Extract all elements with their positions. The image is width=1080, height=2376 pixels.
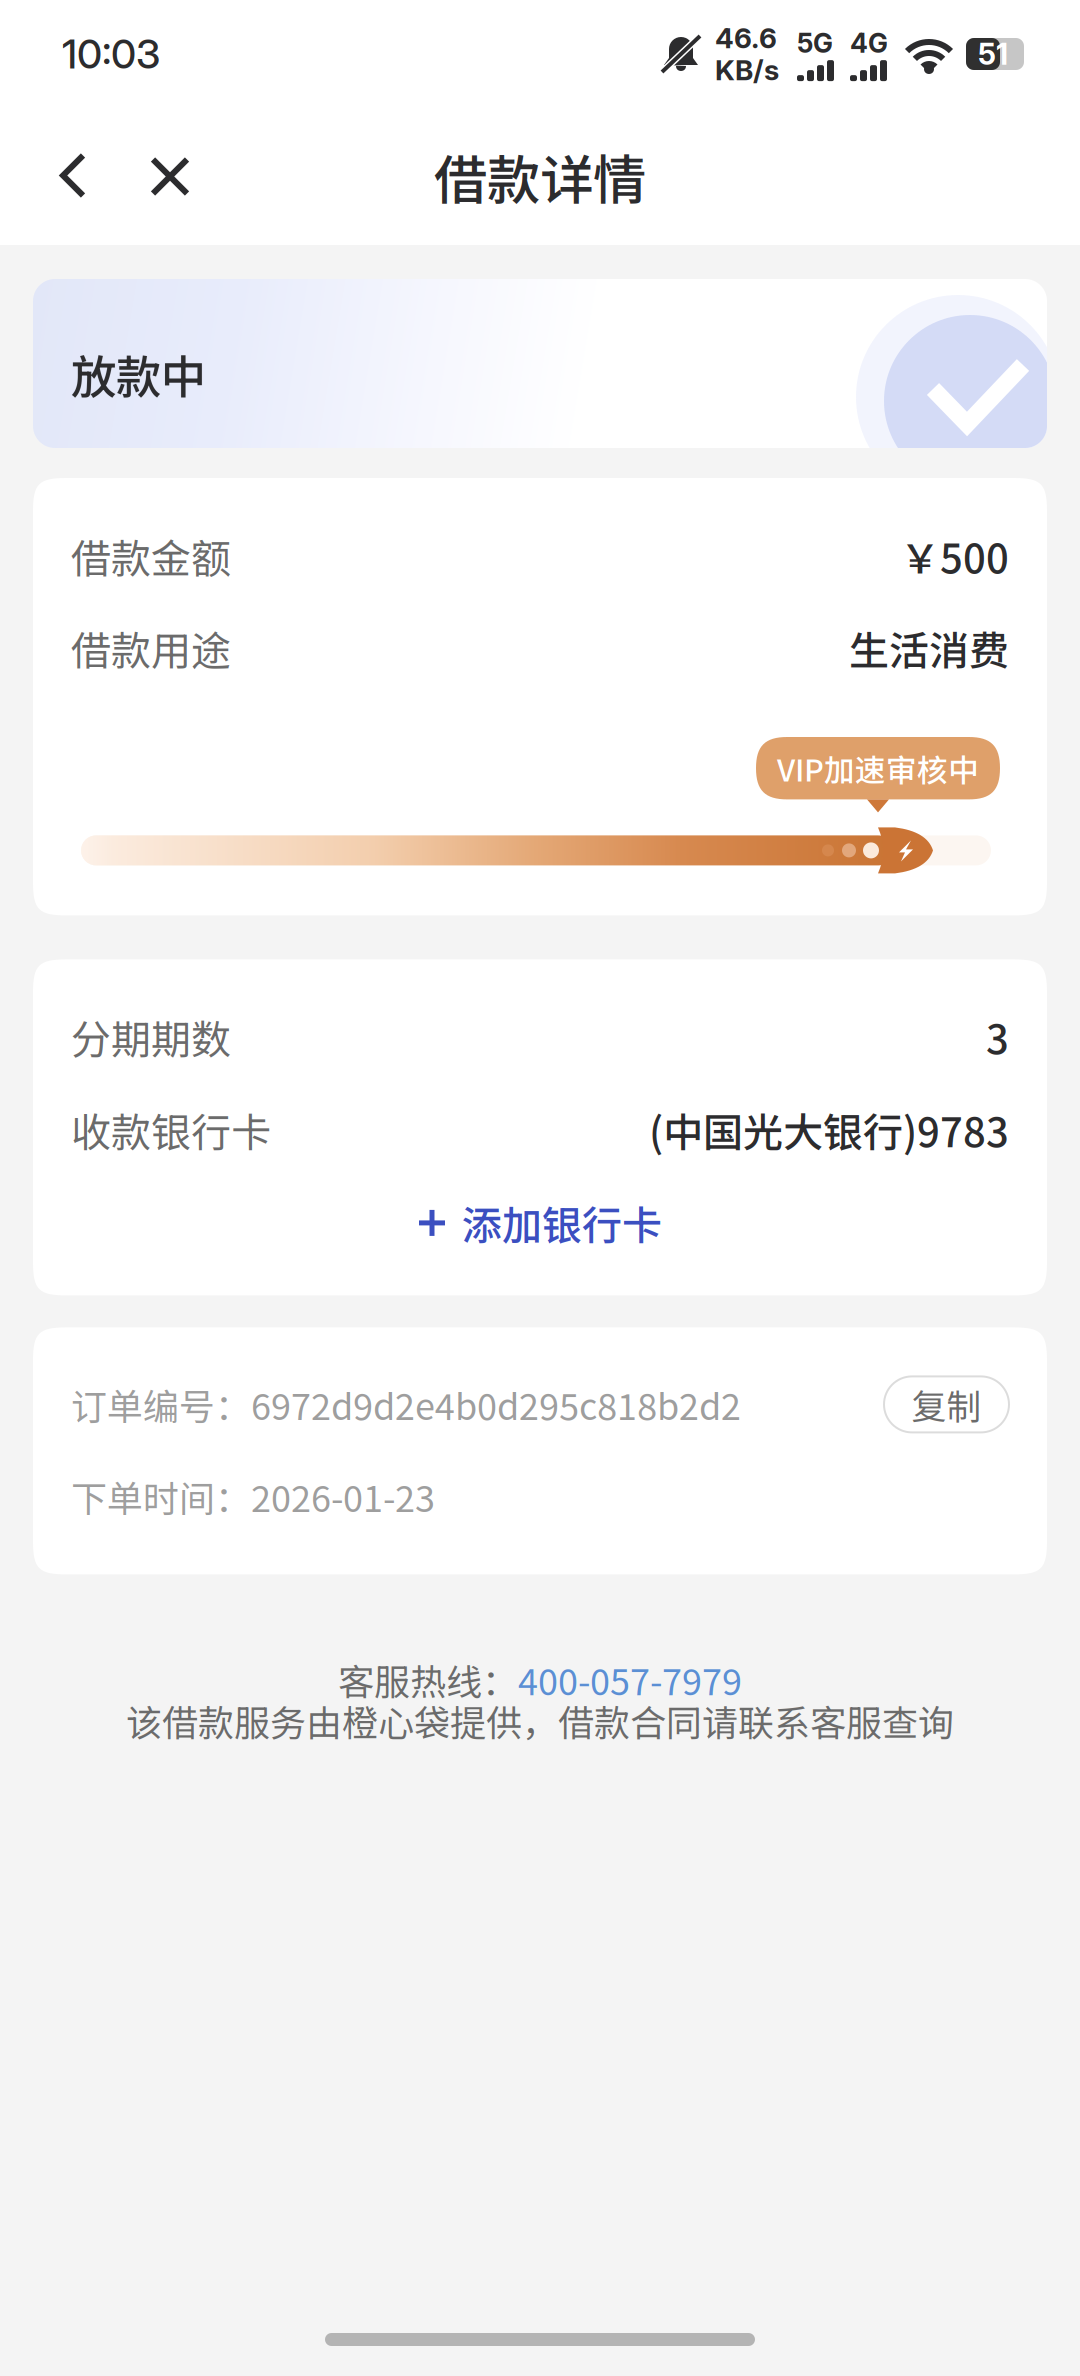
button[interactable]: 添加银行卡 xyxy=(33,1176,1047,1269)
staticText: 订单编号：6972d9d2e4b0d295c818b2d2 xyxy=(71,1378,741,1430)
staticText: ￥500 xyxy=(900,527,1009,585)
staticText: 借款用途 xyxy=(71,619,231,677)
staticText: 客服热线： xyxy=(338,1653,518,1705)
staticText: 下单时间：2026-01-23 xyxy=(71,1470,435,1522)
staticText: 分期期数 xyxy=(71,1008,231,1066)
staticText: 借款详情 xyxy=(434,138,646,215)
button[interactable]: 复制 xyxy=(884,1376,1009,1432)
staticText: VIP加速审核中 xyxy=(777,746,979,790)
staticText: KB/s xyxy=(715,53,779,87)
staticText: 添加银行卡 xyxy=(462,1194,662,1252)
button[interactable]: 400-057-7979 xyxy=(518,1653,742,1705)
staticText: 生活消费 xyxy=(849,619,1009,677)
button[interactable]: Close xyxy=(151,157,219,195)
staticText: 400-057-7979 xyxy=(518,1653,742,1705)
staticText: 3 xyxy=(986,1008,1009,1066)
staticText: 该借款服务由橙心袋提供，借款合同请联系客服查询 xyxy=(126,1694,954,1747)
staticText: 借款金额 xyxy=(71,527,231,585)
staticText: 4G xyxy=(850,27,888,59)
staticText: 46.6 xyxy=(715,21,777,55)
staticText: 复制 xyxy=(911,1379,981,1429)
button[interactable]: Back xyxy=(0,155,151,197)
staticText: 5G xyxy=(797,27,833,59)
staticText: 51 xyxy=(978,36,1008,72)
staticText: 收款银行卡 xyxy=(71,1101,271,1159)
staticText: 放款中 xyxy=(71,341,206,407)
staticText: (中国光大银行)9783 xyxy=(649,1101,1009,1159)
staticText: 10:03 xyxy=(62,30,160,78)
